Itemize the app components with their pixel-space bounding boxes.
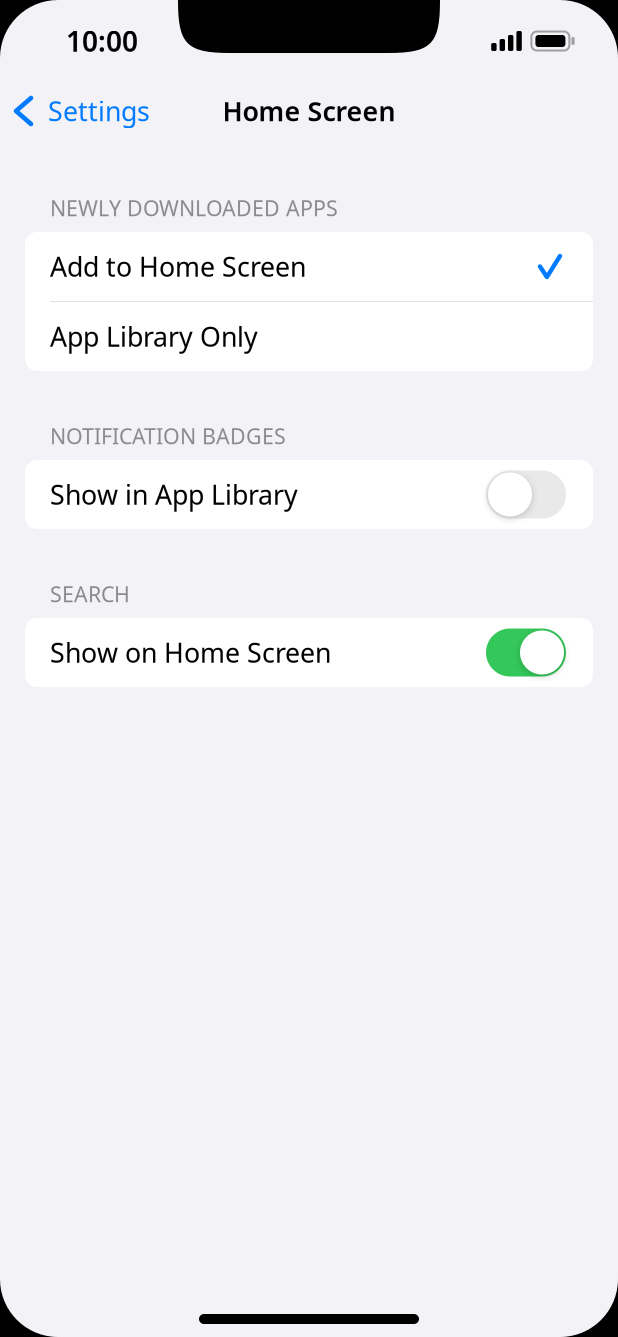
staticText: NEWLY DOWNLOADED APPS [50,194,338,222]
button[interactable]: Settings [0,85,150,137]
button[interactable]: Show in App Library [25,460,593,529]
button[interactable]: Show on Home Screen [25,618,593,687]
button[interactable]: App Library Only [25,302,593,371]
button[interactable]: Off [486,470,566,518]
button[interactable]: Add to Home Screen [25,232,593,301]
staticText: Settings [48,93,150,129]
staticText: Show in App Library [50,477,298,512]
staticText: Home Screen [222,93,395,129]
staticText: Show on Home Screen [50,635,331,670]
staticText: App Library Only [50,319,258,354]
staticText: Add to Home Screen [50,249,306,284]
button[interactable]: On [486,628,566,676]
staticText: SEARCH [50,580,130,608]
staticText: NOTIFICATION BADGES [50,422,286,450]
staticText: 10:00 [66,22,138,60]
